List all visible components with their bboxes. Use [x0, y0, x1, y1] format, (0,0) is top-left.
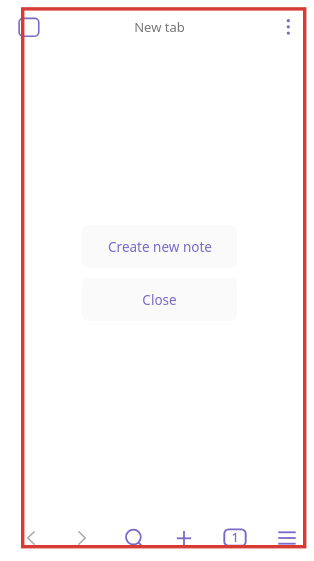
- button[interactable]: Close: [82, 278, 237, 321]
- button[interactable]: Menu: [270, 521, 304, 555]
- button[interactable]: New tab: [167, 521, 201, 555]
- staticText: Create new note: [108, 238, 212, 256]
- button[interactable]: Open tabs: [218, 521, 252, 555]
- button[interactable]: Forward: [65, 521, 99, 555]
- button[interactable]: Back: [14, 521, 48, 555]
- button[interactable]: Search: [116, 521, 150, 555]
- staticText: New tab: [134, 18, 185, 36]
- button[interactable]: Tabs: [14, 13, 45, 42]
- staticText: Close: [142, 291, 177, 309]
- button[interactable]: More options: [276, 13, 300, 41]
- button[interactable]: Create new note: [82, 225, 237, 268]
- staticText: 1: [231, 529, 239, 546]
